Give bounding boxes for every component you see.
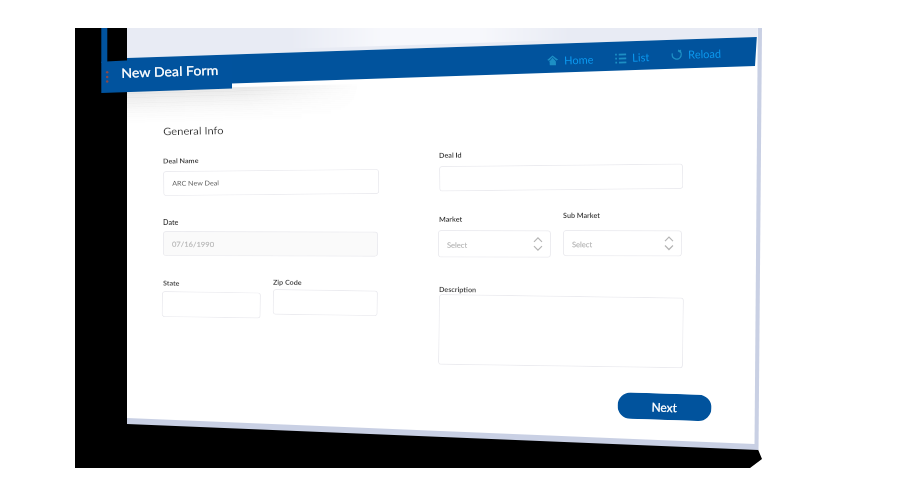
staticText: List — [632, 50, 649, 64]
staticText: Select — [572, 239, 593, 248]
button[interactable]: Next — [617, 392, 712, 421]
staticText: State — [163, 279, 180, 288]
button[interactable] — [162, 291, 261, 318]
staticText: Zip Code — [273, 278, 302, 287]
button[interactable]: Select — [438, 230, 551, 258]
button[interactable] — [439, 163, 683, 192]
staticText: 07/16/1990 — [172, 239, 215, 248]
other: Home — [547, 55, 558, 66]
button[interactable]: New Deal Form — [121, 62, 219, 81]
staticText: Market — [439, 215, 463, 224]
staticText: Deal Name — [163, 156, 199, 165]
staticText: Deal Id — [439, 151, 462, 160]
staticText: Reload — [688, 46, 721, 61]
staticText: Select — [447, 240, 468, 249]
button[interactable]: Home — [547, 52, 594, 67]
other: Reload — [671, 49, 682, 60]
button[interactable] — [273, 289, 378, 316]
staticText: New Deal Form — [121, 62, 219, 81]
button[interactable]: Select — [563, 230, 682, 256]
staticText: Next — [651, 399, 678, 414]
button[interactable]: List — [615, 50, 649, 64]
staticText: Home — [564, 52, 594, 66]
staticText: Description — [439, 285, 477, 294]
button[interactable]: 07/16/1990 — [163, 231, 378, 257]
staticText: Sub Market — [563, 211, 600, 220]
staticText: General Info — [163, 124, 224, 137]
staticText: ARC New Deal — [172, 179, 219, 188]
staticText: Date — [163, 218, 179, 226]
other: List — [615, 52, 626, 63]
button[interactable]: ARC New Deal — [163, 169, 379, 196]
button[interactable]: Reload — [671, 46, 721, 61]
